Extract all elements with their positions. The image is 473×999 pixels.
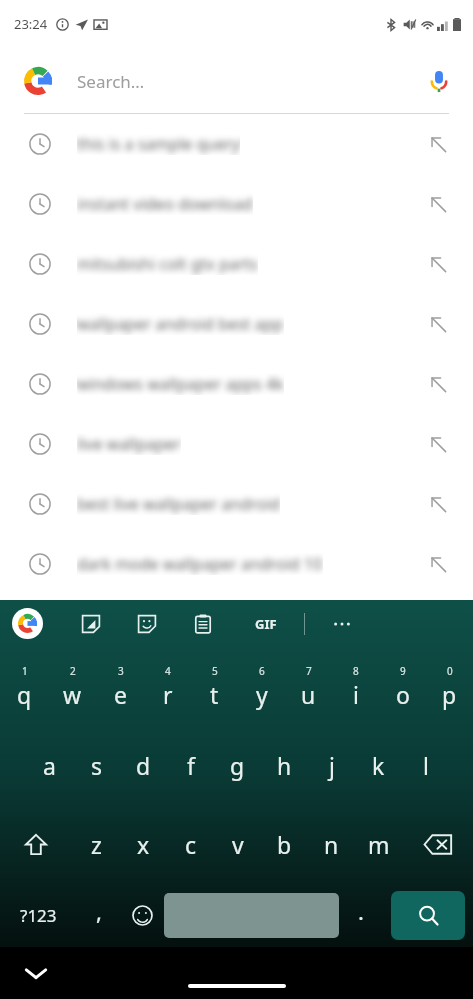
button[interactable]: , xyxy=(77,884,120,947)
button[interactable]: Voice search xyxy=(417,59,461,103)
button[interactable]: Insert suggestion xyxy=(418,124,458,164)
staticText: t xyxy=(210,679,219,710)
staticText: , xyxy=(96,896,102,926)
staticText: dark mode wallpaper android 10 xyxy=(77,553,323,575)
button[interactable]: 1 xyxy=(0,647,48,726)
button[interactable]: h xyxy=(261,726,308,805)
staticText: m xyxy=(368,829,390,860)
button[interactable]: Insert suggestion xyxy=(418,184,458,224)
button[interactable]: More options xyxy=(325,607,359,641)
button[interactable]: z xyxy=(72,805,120,884)
button[interactable]: m xyxy=(355,805,402,884)
staticText: GIF xyxy=(255,615,277,633)
staticText: z xyxy=(91,829,102,860)
staticText: h xyxy=(277,750,292,781)
button[interactable]: wallpaper android best app xyxy=(0,294,473,354)
button[interactable]: Insert suggestion xyxy=(418,364,458,404)
staticText: live wallpaper xyxy=(77,433,181,455)
button[interactable]: f xyxy=(167,726,214,805)
button[interactable]: Hide keyboard xyxy=(18,955,54,991)
staticText: d xyxy=(136,750,151,781)
button[interactable]: mitsubishi colt gtx parts xyxy=(0,234,473,294)
button[interactable]: Shift xyxy=(0,805,72,884)
staticText: e xyxy=(114,679,127,710)
staticText: wallpaper android best app xyxy=(77,313,284,335)
staticText: i xyxy=(353,679,359,710)
staticText: b xyxy=(277,829,292,860)
button[interactable]: best live wallpaper android xyxy=(0,474,473,534)
button[interactable]: Google xyxy=(12,608,43,639)
button[interactable]: s xyxy=(73,726,120,805)
button[interactable]: c xyxy=(167,805,214,884)
button[interactable]: Insert suggestion xyxy=(418,304,458,344)
button[interactable]: 6 xyxy=(238,647,285,726)
staticText: 8 xyxy=(353,664,359,678)
button[interactable]: this is a sample query xyxy=(0,114,473,174)
button[interactable]: g xyxy=(214,726,261,805)
staticText: l xyxy=(423,750,429,781)
staticText: 5 xyxy=(212,664,218,678)
staticText: q xyxy=(17,679,32,710)
button[interactable]: b xyxy=(261,805,308,884)
button[interactable]: j xyxy=(308,726,355,805)
staticText: ?123 xyxy=(20,904,57,927)
staticText: u xyxy=(301,679,316,710)
button[interactable]: Search… xyxy=(0,48,473,114)
button[interactable]: Space xyxy=(164,893,339,938)
button[interactable]: GIF xyxy=(246,607,286,641)
staticText: . xyxy=(358,896,364,926)
staticText: 2 xyxy=(70,664,76,678)
button[interactable]: 0 xyxy=(426,647,473,726)
button[interactable]: . xyxy=(339,884,383,947)
button[interactable]: 8 xyxy=(332,647,379,726)
button[interactable]: Insert suggestion xyxy=(418,424,458,464)
staticText: windows wallpaper apps 4k xyxy=(77,373,284,395)
staticText: n xyxy=(324,829,339,860)
staticText: 23:24 xyxy=(14,15,48,33)
staticText: 0 xyxy=(447,664,453,678)
button[interactable]: 3 xyxy=(96,647,144,726)
staticText: f xyxy=(187,750,195,781)
button[interactable]: x xyxy=(120,805,167,884)
button[interactable]: Search xyxy=(391,891,465,940)
staticText: this is a sample query xyxy=(77,133,240,155)
button[interactable]: Insert suggestion xyxy=(418,544,458,584)
button[interactable]: 9 xyxy=(379,647,426,726)
button[interactable]: Insert suggestion xyxy=(418,244,458,284)
button[interactable]: live wallpaper xyxy=(0,414,473,474)
button[interactable]: l xyxy=(402,726,449,805)
staticText: a xyxy=(43,750,56,781)
button[interactable]: 5 xyxy=(191,647,238,726)
button[interactable]: k xyxy=(355,726,402,805)
staticText: 4 xyxy=(165,664,171,678)
button[interactable]: 2 xyxy=(48,647,96,726)
staticText: p xyxy=(442,679,457,710)
button[interactable]: 4 xyxy=(144,647,191,726)
button[interactable]: a xyxy=(25,726,73,805)
button[interactable]: dark mode wallpaper android 10 xyxy=(0,534,473,594)
button[interactable]: 7 xyxy=(285,647,332,726)
button[interactable]: Stickers xyxy=(130,607,164,641)
staticText: c xyxy=(185,829,197,860)
staticText: w xyxy=(63,679,82,710)
staticText: j xyxy=(329,750,335,781)
staticText: 9 xyxy=(400,664,406,678)
button[interactable]: windows wallpaper apps 4k xyxy=(0,354,473,414)
staticText: mitsubishi colt gtx parts xyxy=(77,253,258,275)
button[interactable]: v xyxy=(214,805,261,884)
staticText: 7 xyxy=(306,664,312,678)
button[interactable]: n xyxy=(308,805,355,884)
button[interactable]: Insert suggestion xyxy=(418,484,458,524)
button[interactable]: Emoji xyxy=(120,884,164,947)
staticText: Search… xyxy=(77,70,145,93)
staticText: k xyxy=(372,750,385,781)
button[interactable]: Clipboard xyxy=(186,607,220,641)
button[interactable]: instant video download xyxy=(0,174,473,234)
staticText: g xyxy=(230,750,245,781)
button[interactable]: ?123 xyxy=(0,884,77,947)
button[interactable]: Backspace xyxy=(402,805,473,884)
staticText: 6 xyxy=(259,664,265,678)
button[interactable]: d xyxy=(120,726,167,805)
button[interactable]: Text edit xyxy=(74,607,108,641)
staticText: 3 xyxy=(118,664,124,678)
